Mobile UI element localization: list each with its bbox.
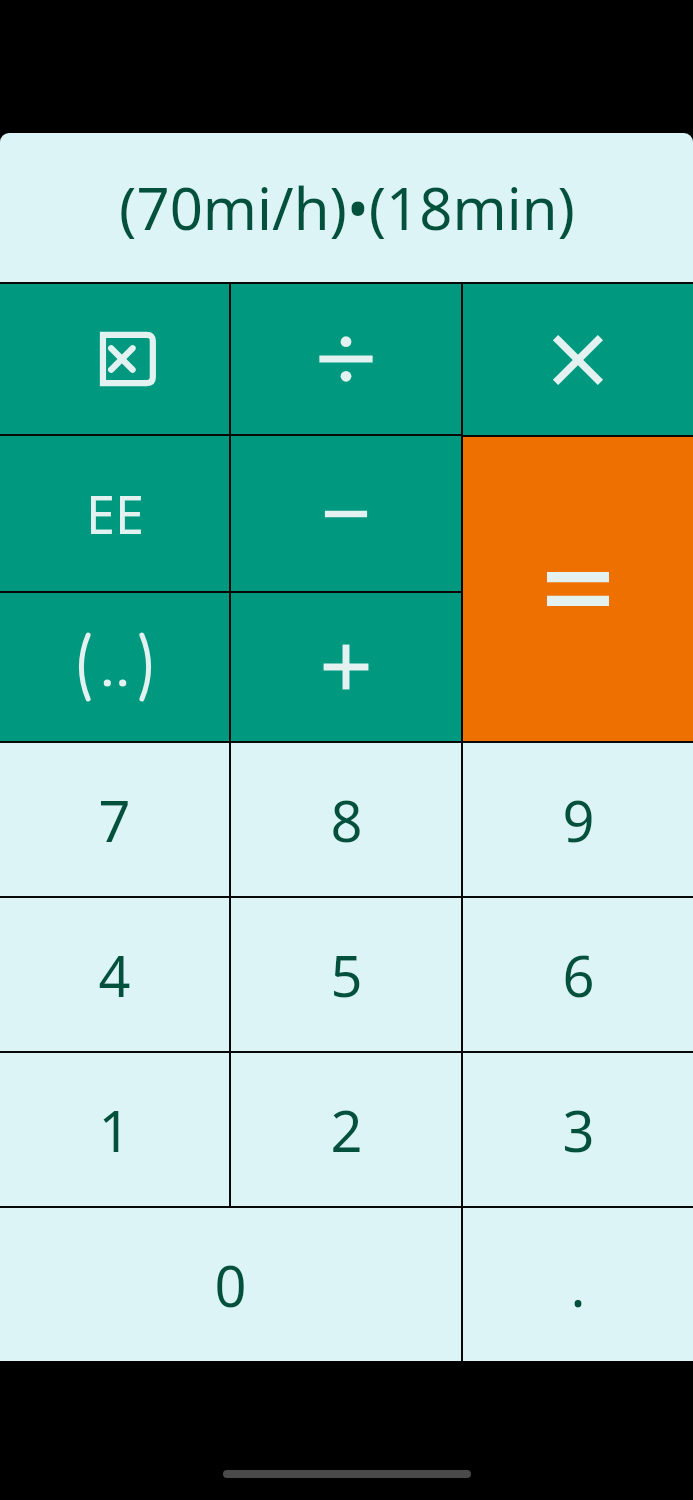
button[interactable]: 4 [0, 898, 229, 1051]
staticText: 9 [562, 782, 595, 858]
button[interactable]: 2 [231, 1053, 461, 1206]
button[interactable]: 1 [0, 1053, 229, 1206]
button[interactable]: EE [0, 436, 229, 591]
button[interactable]: . [463, 1208, 693, 1361]
button[interactable]: Minus [231, 436, 461, 591]
button[interactable]: Parentheses [0, 593, 229, 741]
button[interactable]: 5 [231, 898, 461, 1051]
staticText: . [570, 1247, 586, 1323]
staticText: (70mi/h)•(18min) [119, 168, 575, 247]
staticText: 7 [98, 782, 131, 858]
staticText: 1 [98, 1092, 131, 1168]
staticText: EE [86, 478, 144, 549]
staticText: 2 [330, 1092, 363, 1168]
staticText: 8 [330, 782, 363, 858]
staticText: 6 [562, 937, 595, 1013]
button[interactable]: 0 [0, 1208, 461, 1361]
button[interactable]: 8 [231, 743, 461, 896]
button[interactable]: 6 [463, 898, 693, 1051]
staticText: 5 [330, 937, 363, 1013]
staticText: 4 [98, 937, 131, 1013]
button[interactable]: Equals [463, 437, 693, 741]
button[interactable]: Divide [231, 284, 461, 434]
button[interactable]: 3 [463, 1053, 693, 1206]
staticText: 0 [214, 1247, 247, 1323]
button[interactable]: 7 [0, 743, 229, 896]
staticText: 3 [562, 1092, 595, 1168]
button[interactable]: (70mi/h)•(18min) [0, 133, 693, 282]
button[interactable]: 9 [463, 743, 693, 896]
button[interactable]: Multiply [463, 284, 693, 435]
button[interactable]: Plus [231, 593, 461, 741]
button[interactable]: Backspace [0, 284, 229, 434]
